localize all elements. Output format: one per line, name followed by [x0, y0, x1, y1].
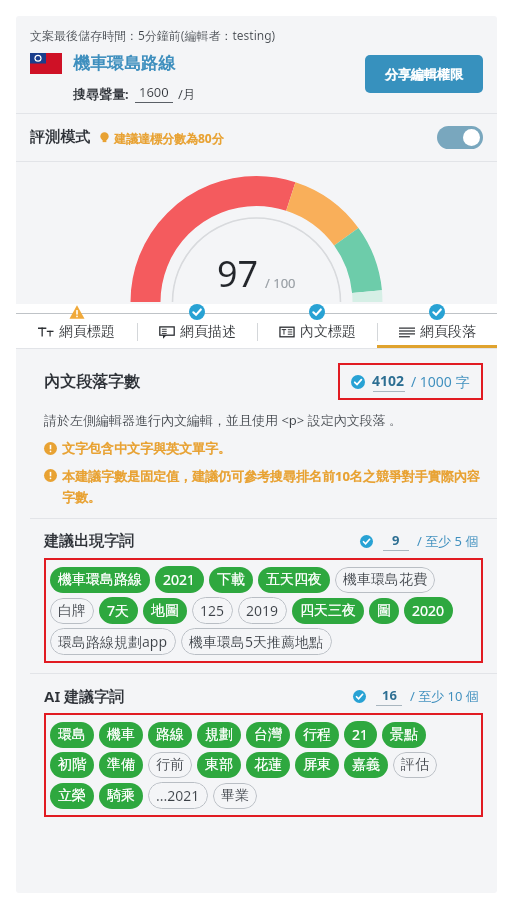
staticText: 4102	[372, 371, 405, 390]
staticText: 機車環島花費	[343, 571, 427, 589]
staticText: 內文標題	[300, 323, 356, 341]
staticText: 125	[200, 601, 225, 620]
button[interactable]: 騎乘	[99, 783, 143, 809]
button[interactable]: 白牌	[50, 598, 94, 624]
staticText: 機車環島5天推薦地點	[189, 632, 324, 651]
staticText: 網頁段落	[420, 323, 476, 341]
staticText: 行前	[156, 756, 184, 774]
staticText: 內文段落字數	[44, 372, 140, 392]
button[interactable]: 機車環島花費	[335, 567, 435, 593]
button[interactable]: 行前	[148, 752, 192, 778]
button[interactable]: 景點	[382, 722, 426, 748]
button[interactable]: 2021	[155, 566, 204, 593]
staticText: /月	[178, 85, 196, 103]
button[interactable]: 下載	[209, 567, 253, 593]
staticText: 7天	[107, 601, 130, 620]
button[interactable]: 評估	[393, 752, 437, 778]
staticText: 建議達標分數為80分	[114, 130, 224, 146]
staticText: 文字包含中文字與英文單字。	[62, 440, 231, 456]
button[interactable]: 機車環島5天推薦地點	[181, 628, 332, 655]
staticText: 分享編輯權限	[385, 66, 463, 82]
staticText: 東部	[205, 756, 233, 774]
button[interactable]: 7天	[99, 597, 138, 624]
button[interactable]: 環島路線規劃app	[50, 628, 176, 655]
staticText: 地圖	[151, 602, 179, 620]
staticText: 1600	[139, 83, 169, 101]
staticText: 16	[382, 686, 397, 704]
button[interactable]: 機車	[99, 722, 143, 748]
staticText: 台灣	[254, 726, 282, 744]
staticText: / 1000 字	[411, 372, 470, 391]
staticText: 下載	[217, 571, 245, 589]
button[interactable]: 125	[192, 597, 233, 624]
staticText: 五天四夜	[266, 571, 322, 589]
staticText: 準備	[107, 756, 135, 774]
staticText: 機車環島路線	[58, 571, 142, 589]
button[interactable]: 台灣	[246, 722, 290, 748]
staticText: 評估	[401, 756, 429, 774]
staticText: 97	[217, 249, 259, 298]
button[interactable]: 地圖	[143, 598, 187, 624]
staticText: / 100	[265, 274, 296, 292]
button[interactable]: 21	[344, 721, 377, 748]
staticText: 2019	[246, 601, 279, 620]
button[interactable]: 分享編輯權限	[365, 55, 483, 93]
staticText: 屏東	[303, 756, 331, 774]
button[interactable]: 四天三夜	[292, 598, 364, 624]
staticText: 請於左側編輯器進行內文編輯，並且使用 <p> 設定內文段落 。	[44, 411, 403, 429]
button[interactable]: 準備	[99, 752, 143, 778]
staticText: 初階	[58, 756, 86, 774]
staticText: 網頁標題	[59, 323, 115, 341]
button[interactable]: 花蓮	[246, 752, 290, 778]
staticText: 立榮	[58, 787, 86, 805]
staticText: 嘉義	[352, 756, 380, 774]
staticText: 環島路線規劃app	[58, 632, 168, 651]
staticText: / 至少 10 個	[410, 687, 479, 705]
button[interactable]: 環島	[50, 722, 94, 748]
button[interactable]: 2020	[404, 597, 453, 624]
staticText: 2021	[163, 570, 196, 589]
button[interactable]: 嘉義	[344, 752, 388, 778]
staticText: 騎乘	[107, 787, 135, 805]
staticText: ...2021	[156, 786, 200, 805]
button[interactable]: 五天四夜	[258, 567, 330, 593]
button[interactable]: 路線	[148, 722, 192, 748]
staticText: 景點	[390, 726, 418, 744]
button[interactable]: 東部	[197, 752, 241, 778]
button[interactable]: Toggle evaluation mode	[437, 126, 483, 149]
button[interactable]: 初階	[50, 752, 94, 778]
staticText: 網頁描述	[180, 323, 236, 341]
staticText: 圖	[377, 602, 391, 620]
staticText: 行程	[303, 726, 331, 744]
button[interactable]: 網頁描述	[137, 304, 257, 348]
staticText: 四天三夜	[300, 602, 356, 620]
button[interactable]: 網頁標題	[16, 304, 137, 348]
button[interactable]: 立榮	[50, 783, 94, 809]
staticText: 9	[392, 531, 400, 549]
button[interactable]: 2019	[238, 597, 287, 624]
staticText: 路線	[156, 726, 184, 744]
button[interactable]: 機車環島路線	[50, 567, 150, 593]
staticText: 環島	[58, 726, 86, 744]
staticText: 21	[352, 725, 369, 744]
button[interactable]: 網頁段落	[377, 304, 497, 348]
staticText: 建議出現字詞	[44, 532, 134, 551]
staticText: 本建議字數是固定值，建議仍可參考搜尋排名前10名之競爭對手實際內容字數。	[62, 467, 483, 506]
staticText: 機車環島路線	[73, 53, 175, 74]
button[interactable]: ...2021	[148, 782, 208, 809]
staticText: AI 建議字詞	[44, 686, 125, 706]
staticText: 評測模式	[30, 128, 90, 147]
button[interactable]: 畢業	[213, 783, 257, 809]
staticText: 文案最後儲存時間：5分鐘前(編輯者：testing)	[30, 27, 276, 43]
staticText: / 至少 5 個	[417, 532, 479, 550]
button[interactable]: 內文標題	[257, 304, 377, 348]
staticText: 花蓮	[254, 756, 282, 774]
button[interactable]: 行程	[295, 722, 339, 748]
staticText: 白牌	[58, 602, 86, 620]
staticText: 搜尋聲量:	[73, 85, 129, 103]
staticText: 2020	[412, 601, 445, 620]
staticText: 機車	[107, 726, 135, 744]
button[interactable]: 圖	[369, 598, 399, 624]
button[interactable]: 規劃	[197, 722, 241, 748]
button[interactable]: 屏東	[295, 752, 339, 778]
